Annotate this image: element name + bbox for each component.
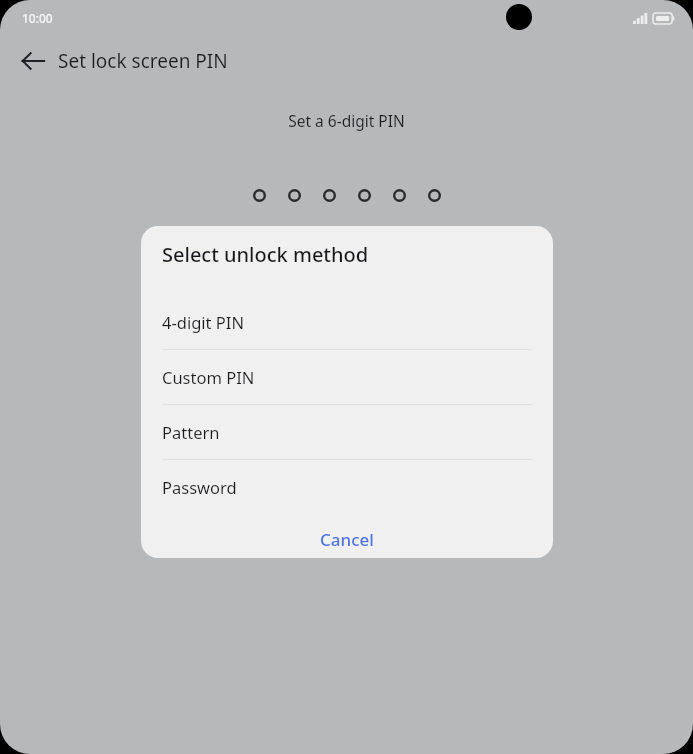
- button[interactable]: Password: [141, 460, 553, 514]
- staticText: Custom PIN: [162, 366, 255, 388]
- staticText: Pattern: [162, 421, 220, 443]
- staticText: 4-digit PIN: [162, 311, 244, 333]
- staticText: Set lock screen PIN: [58, 48, 228, 74]
- button[interactable]: 4-digit PIN: [141, 295, 553, 349]
- button[interactable]: Pattern: [141, 405, 553, 459]
- button[interactable]: Cancel: [141, 520, 553, 558]
- staticText: Set a 6-digit PIN: [0, 110, 693, 131]
- button[interactable]: Custom PIN: [141, 350, 553, 404]
- staticText: Cancel: [320, 528, 374, 551]
- button[interactable]: Back: [14, 42, 52, 80]
- staticText: Password: [162, 476, 237, 498]
- staticText: Select unlock method: [162, 241, 369, 268]
- staticText: 10:00: [22, 10, 53, 26]
